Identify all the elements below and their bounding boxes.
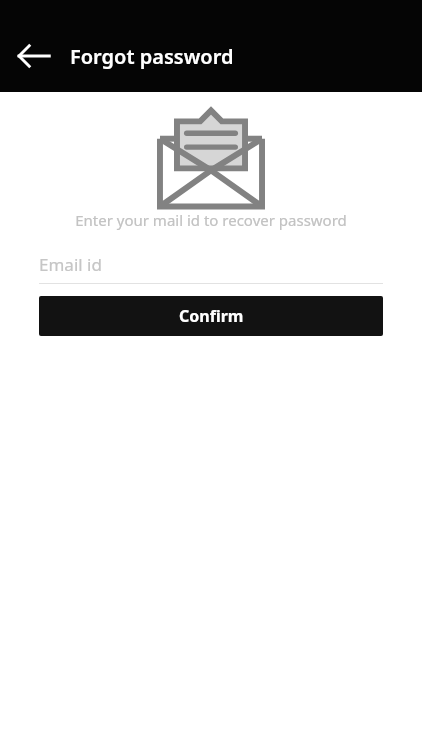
button[interactable]: Email id <box>39 250 383 284</box>
button[interactable]: Back <box>8 30 60 82</box>
button[interactable]: Confirm <box>39 296 383 336</box>
staticText: Confirm <box>179 305 244 327</box>
staticText: Enter your mail id to recover password <box>75 210 347 230</box>
staticText: Email id <box>39 253 102 276</box>
staticText: Forgot password <box>70 43 234 70</box>
